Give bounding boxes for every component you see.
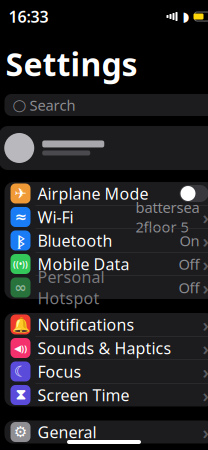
button[interactable]: ☾	[4, 360, 208, 383]
staticText: Focus	[37, 361, 81, 382]
staticText: ◗	[182, 9, 189, 24]
staticText: Wi-Fi	[37, 206, 73, 228]
button[interactable]: ◀))	[4, 336, 208, 359]
button[interactable]: ≈	[4, 205, 208, 228]
button[interactable]: ∞	[4, 276, 208, 299]
staticText: ≈	[14, 209, 26, 225]
staticText: Settings	[5, 42, 137, 85]
staticText: ›	[202, 205, 208, 229]
staticText: Off	[178, 278, 199, 297]
button[interactable]: ᛒ	[4, 229, 208, 252]
staticText: ›	[202, 383, 208, 407]
staticText: ›	[202, 359, 208, 384]
button[interactable]: 🔔	[4, 313, 208, 336]
staticText: battersea 2floor 5	[135, 197, 199, 236]
staticText: ☾	[14, 363, 27, 380]
staticText: ⧗	[15, 388, 25, 402]
staticText: ◀))	[14, 342, 27, 354]
staticText: Personal Hotspot	[37, 266, 104, 309]
staticText: ◯	[12, 98, 25, 112]
staticText: ✈	[14, 185, 26, 202]
staticText: Bluetooth	[37, 230, 112, 251]
staticText: Screen Time	[37, 384, 129, 406]
staticText: ((•))	[13, 259, 28, 269]
staticText: ›	[202, 275, 208, 300]
staticText: Sounds & Haptics	[37, 337, 171, 359]
button[interactable]: ((•))	[4, 252, 208, 275]
staticText: ›	[202, 228, 208, 253]
button[interactable]: ⧗	[4, 383, 208, 406]
button[interactable]: ›	[0, 126, 208, 170]
staticText: Off	[178, 254, 199, 274]
staticText: Notifications	[37, 314, 134, 335]
staticText: ›	[202, 252, 208, 276]
staticText: ᛒ	[17, 231, 24, 250]
staticText: 16:33	[8, 6, 48, 27]
staticText: Airplane Mode	[37, 183, 148, 204]
staticText: On	[179, 231, 199, 250]
staticText: Mobile Data	[37, 253, 129, 275]
staticText: ›	[202, 312, 208, 337]
button[interactable]: ⚙	[4, 420, 208, 443]
staticText: ›	[202, 336, 208, 360]
button[interactable]: ✈	[4, 182, 208, 205]
staticText: General	[37, 421, 96, 443]
staticText: ∞	[14, 279, 26, 296]
staticText: ⚙	[14, 424, 27, 440]
staticText: Search	[29, 95, 75, 115]
staticText: ›	[202, 420, 208, 444]
staticText: 🔔	[11, 316, 29, 333]
button[interactable]: ◯	[4, 94, 208, 116]
